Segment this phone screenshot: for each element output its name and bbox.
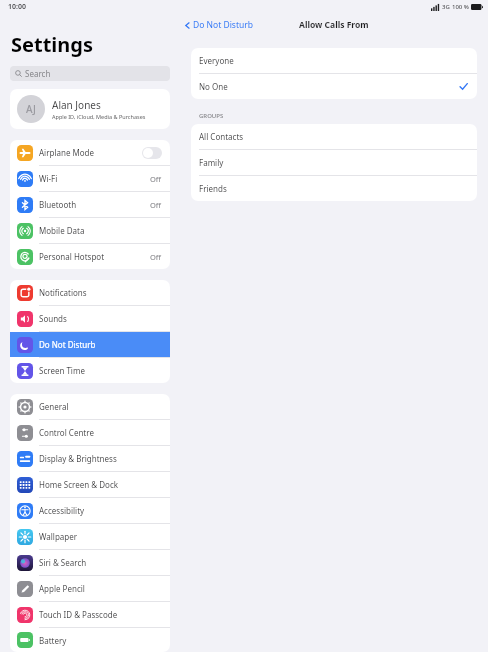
staticText: Airplane Mode [39,147,142,158]
staticText: GROUPS [199,112,224,120]
button[interactable]: Notifications [10,280,170,305]
staticText: Settings [11,31,93,58]
button[interactable]: Wi-Fi [10,166,170,191]
button[interactable]: General [10,394,170,419]
staticText: Control Centre [39,427,162,438]
staticText: Apple Pencil [39,583,162,594]
button[interactable]: Screen Time [10,358,170,383]
staticText: Battery [39,635,162,646]
button[interactable]: Family [191,150,477,175]
staticText: Apple ID, iCloud, Media & Purchases [52,113,146,120]
button[interactable]: Accessibility [10,498,170,523]
staticText: Everyone [199,55,468,66]
button[interactable]: Do Not Disturb [10,332,170,357]
staticText: Notifications [39,287,162,298]
staticText: 3G [442,3,450,11]
button[interactable]: Airplane Mode [10,140,170,165]
button[interactable]: Everyone [191,48,477,73]
button[interactable]: Apple Pencil [10,576,170,601]
button[interactable]: Search [10,66,170,81]
button[interactable]: Mobile Data [10,218,170,243]
staticText: Do Not Disturb [193,19,253,31]
button[interactable]: All Contacts [191,124,477,149]
staticText: Off [150,174,162,184]
staticText: Siri & Search [39,557,162,568]
staticText: Personal Hotspot [39,251,150,262]
button[interactable]: Control Centre [10,420,170,445]
button[interactable]: Touch ID & Passcode [10,602,170,627]
button[interactable]: Personal Hotspot [10,244,170,269]
staticText: 100 % [452,3,469,11]
staticText: Family [199,157,468,168]
staticText: Wi-Fi [39,173,150,184]
staticText: AJ [26,102,36,116]
staticText: No One [199,81,459,92]
staticText: Display & Brightness [39,453,162,464]
staticText: All Contacts [199,131,468,142]
staticText: Do Not Disturb [39,339,162,350]
staticText: Off [150,200,162,210]
staticText: Allow Calls From [299,19,369,31]
button[interactable]: Friends [191,176,477,201]
staticText: Home Screen & Dock [39,479,162,490]
staticText: Friends [199,183,468,194]
staticText: 10:00 [8,2,26,12]
button[interactable]: Home Screen & Dock [10,472,170,497]
staticText: General [39,401,162,412]
button[interactable]: AJ [10,89,170,129]
button[interactable]: Do Not Disturb [180,17,259,33]
button[interactable]: Airplane Mode toggle [142,147,162,159]
staticText: Off [150,252,162,262]
staticText: Accessibility [39,505,162,516]
staticText: Mobile Data [39,225,162,236]
staticText: Search [25,68,51,79]
staticText: Wallpaper [39,531,162,542]
staticText: Screen Time [39,365,162,376]
staticText: Touch ID & Passcode [39,609,162,620]
button[interactable]: Wallpaper [10,524,170,549]
button[interactable]: Sounds [10,306,170,331]
button[interactable]: Battery [10,628,170,652]
staticText: Bluetooth [39,199,150,210]
button[interactable]: Bluetooth [10,192,170,217]
button[interactable]: Display & Brightness [10,446,170,471]
staticText: Sounds [39,313,162,324]
staticText: Alan Jones [52,98,101,112]
button[interactable]: No One [191,74,477,99]
button[interactable]: Siri & Search [10,550,170,575]
